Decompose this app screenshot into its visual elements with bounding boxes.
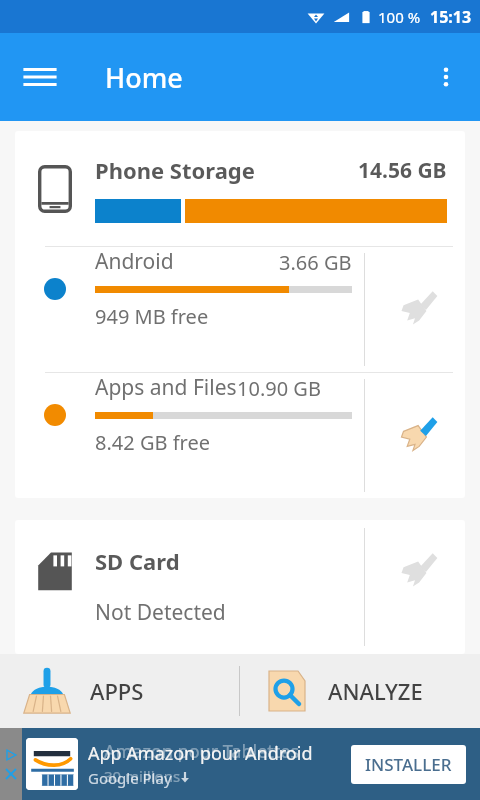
button[interactable]: App Amazon pour Android — [0, 728, 480, 800]
staticText: Android — [95, 247, 174, 276]
staticText: 10.90 GB — [237, 375, 321, 402]
button[interactable]: Clean Apps and Files — [365, 373, 465, 498]
staticText: ANALYZE — [328, 676, 423, 706]
staticText: SD Card — [95, 546, 180, 576]
staticText: 100 % — [378, 7, 421, 27]
staticText: 949 MB free — [95, 303, 209, 330]
staticText: App Amazon pour Android — [88, 741, 313, 766]
button[interactable]: Clean SD Card — [365, 520, 465, 654]
staticText: Not Detected — [95, 598, 226, 627]
staticText: Apps and Files — [95, 373, 237, 402]
button[interactable]: SD Card — [15, 520, 465, 654]
staticText: 3.66 GB — [279, 249, 352, 276]
staticText: 14.56 GB — [358, 156, 447, 185]
button[interactable]: INSTALLER — [351, 745, 466, 784]
staticText: 8.42 GB free — [95, 429, 210, 456]
button[interactable]: More options — [420, 51, 472, 103]
staticText: APPS — [90, 676, 144, 706]
button[interactable]: APPS — [0, 654, 239, 728]
button[interactable]: Clean Android — [365, 247, 465, 372]
staticText: Phone Storage — [95, 155, 255, 185]
staticText: INSTALLER — [365, 753, 452, 776]
button[interactable]: ANALYZE — [240, 654, 480, 728]
button[interactable]: Android — [15, 247, 465, 372]
button[interactable]: Apps and Files — [15, 373, 465, 498]
staticText: Home — [105, 59, 183, 96]
staticText: Google Play — [88, 768, 172, 788]
button[interactable]: Phone Storage — [15, 131, 465, 246]
button[interactable]: Open navigation menu — [14, 51, 66, 103]
staticText: 30 millions — [104, 766, 181, 786]
staticText: Amazon pour Tablettes — [104, 739, 300, 764]
staticText: 15:13 — [430, 6, 472, 28]
